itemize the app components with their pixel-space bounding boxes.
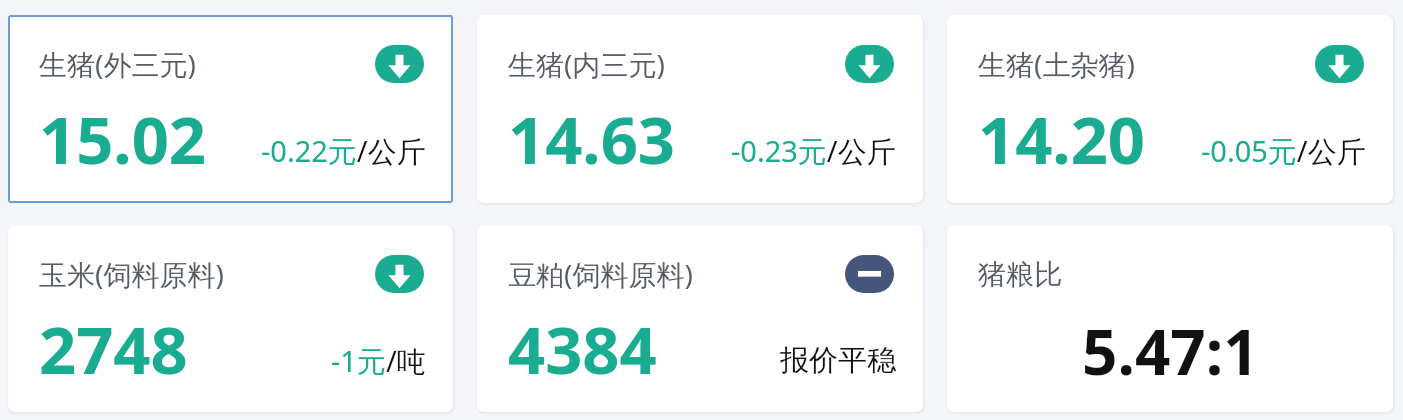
staticText: 生猪(内三元) xyxy=(508,45,665,83)
button[interactable]: 生猪(内三元) xyxy=(477,15,923,203)
staticText: 豆粕(饲料原料) xyxy=(508,255,693,293)
staticText: 猪粮比 xyxy=(978,257,1062,292)
button[interactable]: 生猪(外三元) xyxy=(8,15,453,203)
other: Price down xyxy=(375,45,424,83)
other: Price down xyxy=(375,255,424,293)
staticText: 5.47:1 xyxy=(1082,309,1259,393)
staticText: 生猪(土杂猪) xyxy=(978,45,1135,83)
other: Price stable xyxy=(845,255,894,293)
button[interactable]: 生猪(土杂猪) xyxy=(947,15,1393,203)
other: Price down xyxy=(845,45,894,83)
staticText: 14.63 xyxy=(508,95,675,184)
button[interactable]: 猪粮比 xyxy=(947,225,1393,412)
staticText: -0.05元/公斤 xyxy=(1201,131,1366,171)
staticText: 15.02 xyxy=(39,95,206,184)
staticText: -1元/吨 xyxy=(331,341,426,381)
button[interactable]: 玉米(饲料原料) xyxy=(8,225,453,412)
staticText: 生猪(外三元) xyxy=(39,45,196,83)
staticText: 玉米(饲料原料) xyxy=(39,255,224,293)
staticText: 2748 xyxy=(39,305,188,394)
staticText: 14.20 xyxy=(978,95,1145,184)
staticText: -0.22元/公斤 xyxy=(261,131,426,171)
staticText: 4384 xyxy=(508,305,657,394)
other: Price down xyxy=(1315,45,1364,83)
button[interactable]: 豆粕(饲料原料) xyxy=(477,225,923,412)
staticText: 报价平稳 xyxy=(780,342,896,379)
staticText: -0.23元/公斤 xyxy=(731,131,896,171)
